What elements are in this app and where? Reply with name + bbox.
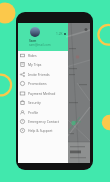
button[interactable]: My Trips [18,60,68,69]
staticText: My Trips [28,62,42,67]
button[interactable]: Invite Friends [18,70,68,79]
button[interactable]: Rides [18,51,68,60]
staticText: sam@mail.com [29,43,51,47]
button[interactable]: Profile [18,108,68,117]
button[interactable]: Emergency Contact [18,117,68,126]
button[interactable]: Help & Support [18,126,68,135]
staticText: Invite Friends [28,72,50,77]
staticText: 1.2K [56,32,63,36]
button[interactable]: Payment Method [18,89,68,98]
staticText: Promotions [28,81,47,86]
staticText: Payment Method [28,91,56,96]
button[interactable]: Promotions [18,79,68,88]
staticText: Help & Support [28,128,53,133]
button[interactable]: Security [18,98,68,107]
staticText: Sam [29,38,37,43]
staticText: Security [28,100,41,105]
staticText: Rides [28,53,37,58]
staticText: Profile [28,110,39,115]
staticText: Emergency Contact [28,119,59,124]
